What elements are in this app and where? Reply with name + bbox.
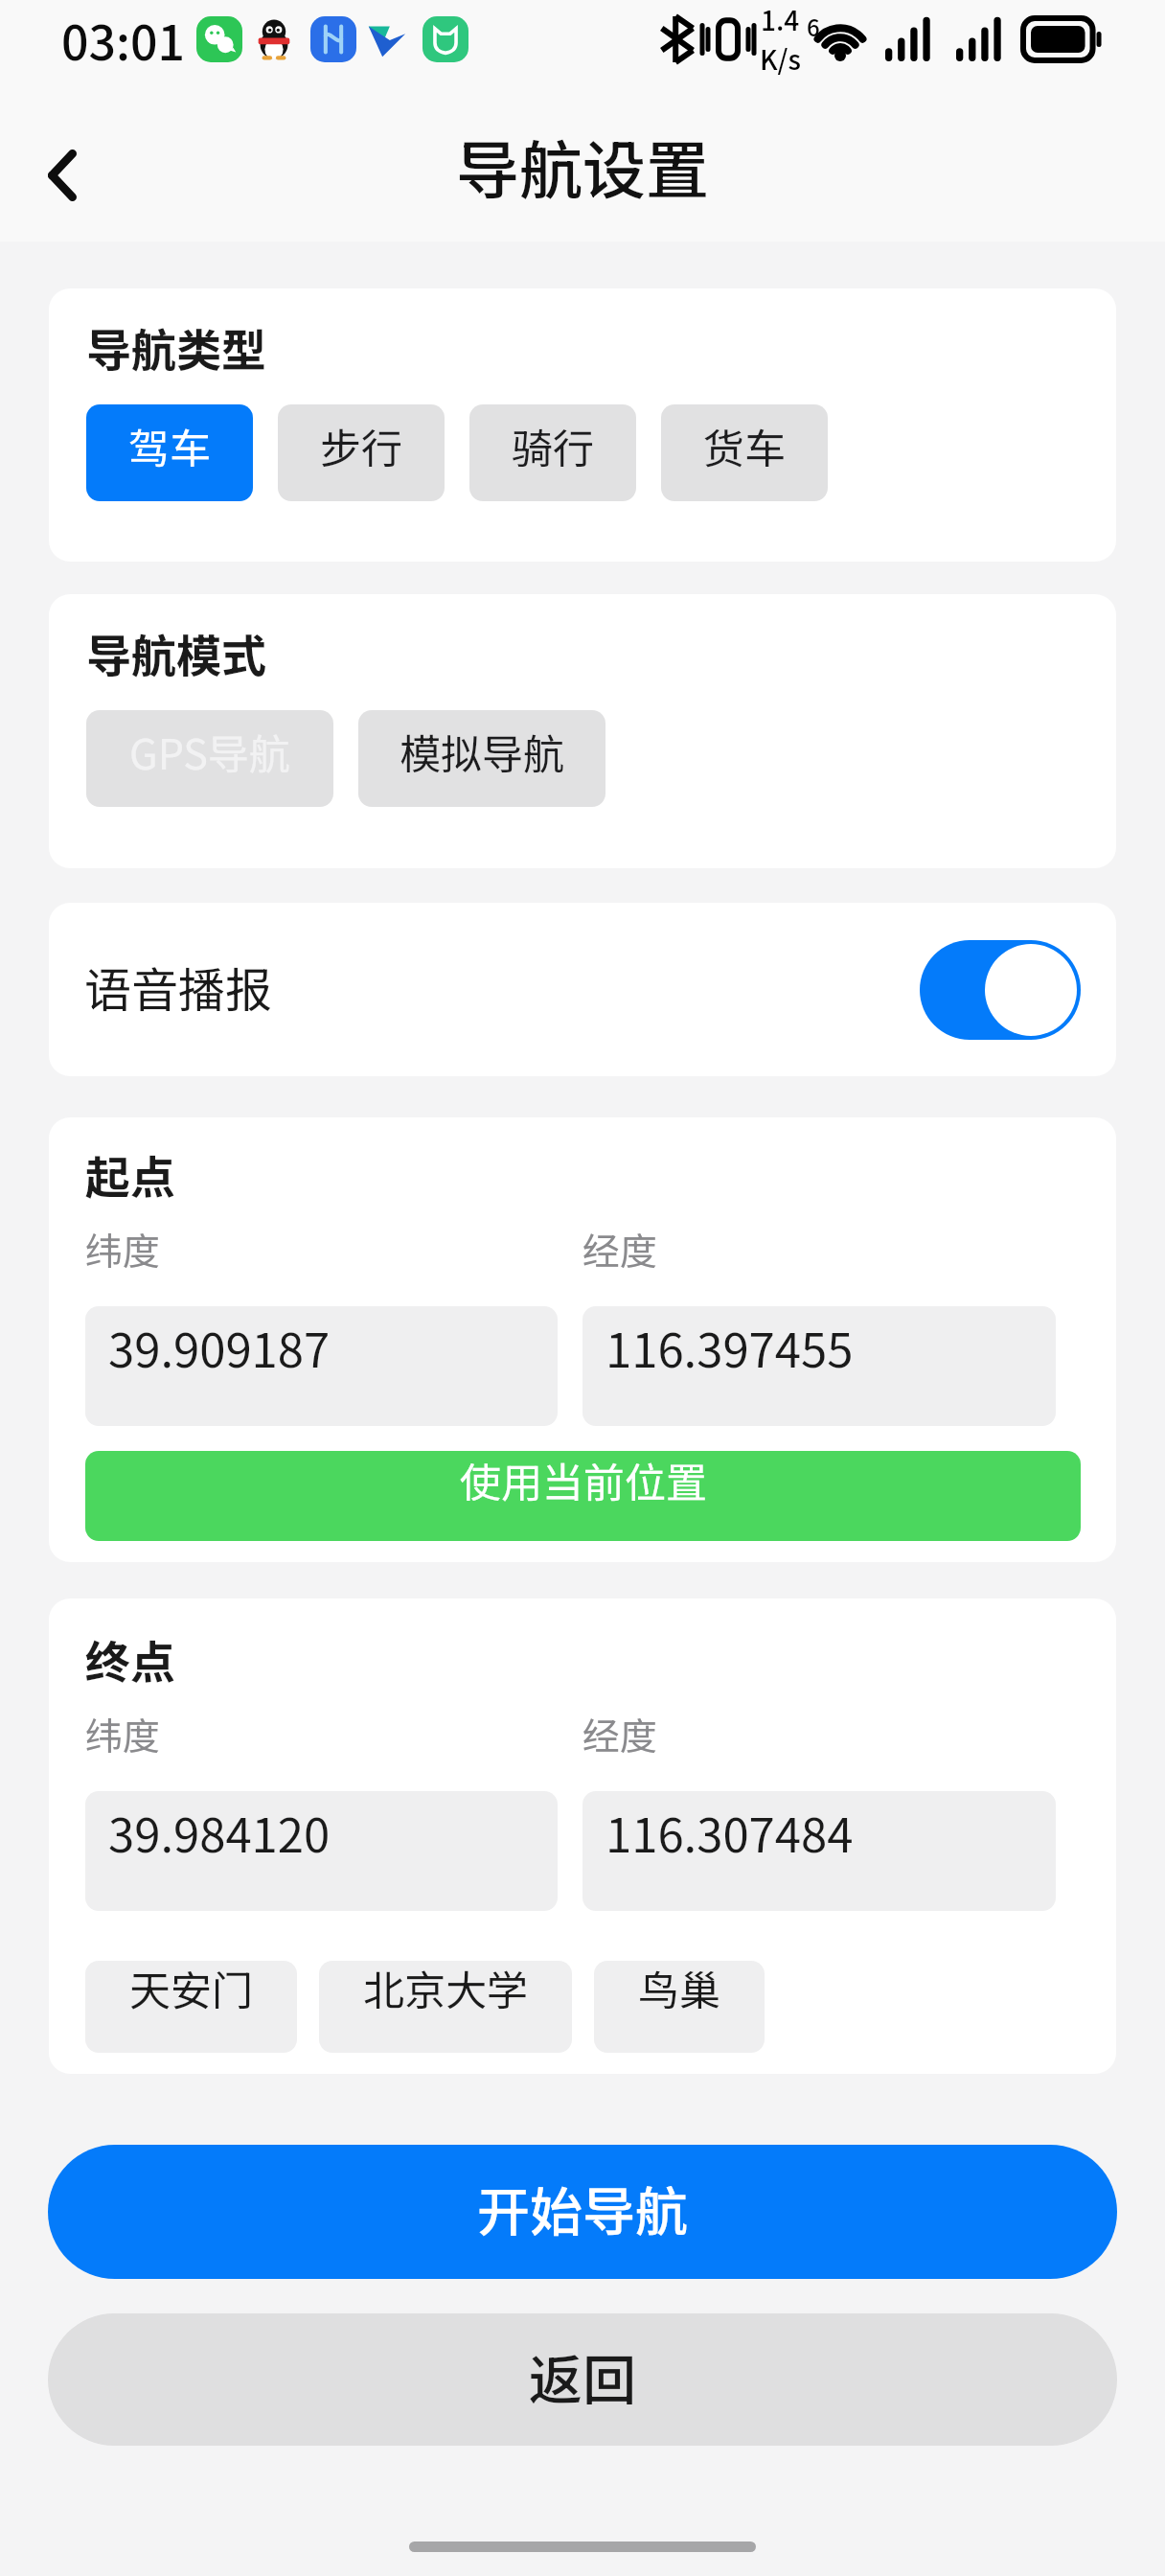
button[interactable]: 天安门 — [85, 1961, 297, 2053]
button[interactable]: 返回 — [48, 2313, 1117, 2446]
staticText: 模拟导航 — [400, 722, 564, 781]
staticText: 驾车 — [128, 416, 211, 475]
button[interactable]: 模拟导航 — [358, 710, 605, 807]
staticText: 起点 — [85, 1141, 175, 1207]
staticText: 39.984120 — [108, 1798, 331, 1866]
staticText: 开始导航 — [477, 2170, 689, 2246]
button[interactable]: 116.307484 — [582, 1791, 1056, 1911]
staticText: 39.909187 — [108, 1313, 331, 1381]
button[interactable]: GPS导航 — [86, 710, 333, 807]
staticText: 语音播报 — [84, 953, 273, 1021]
button[interactable]: 步行 — [278, 404, 445, 501]
staticText: 返回 — [529, 2337, 636, 2415]
staticText: 使用当前位置 — [460, 1451, 707, 1509]
staticText: 03:01 — [61, 5, 185, 74]
staticText: 经度 — [582, 1222, 658, 1276]
staticText: 导航设置 — [456, 120, 709, 212]
staticText: 1.4 — [761, 0, 800, 39]
staticText: 纬度 — [85, 1222, 161, 1276]
button[interactable]: 货车 — [661, 404, 828, 501]
button[interactable]: 开始导航 — [48, 2145, 1117, 2279]
staticText: 导航模式 — [86, 620, 266, 685]
staticText: 116.307484 — [605, 1798, 854, 1866]
button[interactable]: 鸟巢 — [594, 1961, 765, 2053]
staticText: 骑行 — [512, 416, 594, 475]
button[interactable]: 116.397455 — [582, 1306, 1056, 1426]
staticText: 鸟巢 — [638, 1961, 720, 2017]
button[interactable]: 驾车 — [86, 404, 253, 501]
staticText: 步行 — [320, 416, 402, 475]
button[interactable]: 39.984120 — [85, 1791, 558, 1911]
staticText: 经度 — [582, 1707, 658, 1760]
staticText: 6 — [807, 10, 820, 43]
staticText: 天安门 — [129, 1961, 253, 2017]
staticText: GPS导航 — [129, 722, 290, 781]
button[interactable]: 北京大学 — [319, 1961, 572, 2053]
button[interactable]: 返回 — [24, 132, 101, 218]
staticText: 导航类型 — [86, 314, 266, 379]
staticText: 纬度 — [85, 1707, 161, 1760]
staticText: K/s — [760, 39, 801, 79]
staticText: 北京大学 — [363, 1961, 528, 2017]
button[interactable]: 39.909187 — [85, 1306, 558, 1426]
staticText: 116.397455 — [605, 1313, 854, 1381]
button[interactable]: 使用当前位置 — [85, 1451, 1081, 1541]
staticText: 终点 — [85, 1626, 175, 1691]
button[interactable]: 骑行 — [469, 404, 636, 501]
staticText: 货车 — [703, 416, 786, 475]
button[interactable]: 语音播报开关 — [920, 940, 1081, 1040]
